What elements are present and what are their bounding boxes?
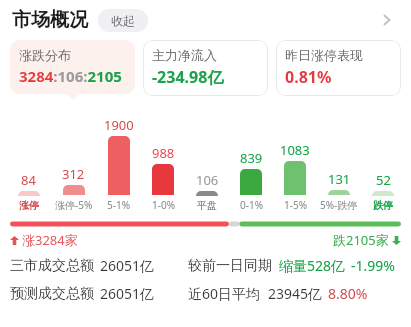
staticText: 0.81% — [285, 66, 332, 88]
staticText: 涨停-5% — [55, 198, 93, 212]
staticText: 0-1% — [240, 198, 263, 212]
staticText: 1083 — [280, 141, 310, 159]
staticText: 131 — [328, 170, 351, 188]
staticText: 106 — [196, 171, 219, 189]
staticText: 较前一日同期 — [188, 257, 272, 275]
staticText: 跌停 — [373, 199, 393, 212]
staticText: 近60日平均 — [188, 284, 261, 303]
staticText: 主力净流入 — [152, 47, 217, 63]
staticText: 1-5% — [284, 198, 307, 212]
staticText: 收起 — [111, 13, 135, 28]
staticText: 昨日涨停表现 — [285, 47, 363, 63]
staticText: 三市成交总额 — [10, 257, 94, 275]
staticText: 涨3284家 — [22, 231, 78, 249]
staticText: 26051亿 — [100, 256, 155, 275]
staticText: 涨跌分布 — [19, 47, 71, 63]
staticText: 缩量528亿 — [279, 256, 346, 275]
button[interactable]: 收起 — [98, 9, 148, 32]
staticText: 5%-跌停 — [320, 198, 358, 212]
staticText: 312 — [62, 165, 85, 183]
staticText: 平盘 — [197, 199, 217, 212]
staticText: 52 — [376, 171, 391, 189]
staticText: 23945亿 — [268, 284, 323, 303]
staticText: 839 — [240, 149, 263, 167]
button[interactable]: 主力净流入 — [143, 40, 268, 96]
staticText: 1-0% — [152, 198, 175, 212]
staticText: 8.80% — [328, 284, 368, 303]
staticText: 市场概况 — [12, 8, 88, 32]
staticText: 预测成交总额 — [10, 285, 94, 303]
staticText: 26051亿 — [100, 284, 155, 303]
staticText: 988 — [152, 144, 175, 162]
staticText: 84 — [21, 171, 36, 189]
staticText: 5-1% — [107, 198, 130, 212]
staticText: 涨停 — [19, 199, 39, 212]
staticText: 1900 — [104, 116, 134, 134]
button[interactable]: More — [373, 6, 401, 34]
staticText: 3284:106:2105 — [19, 66, 122, 86]
button[interactable]: 昨日涨停表现 — [276, 40, 401, 96]
staticText: -234.98亿 — [152, 66, 224, 88]
staticText: -1.99% — [351, 256, 395, 275]
button[interactable]: 涨跌分布 — [10, 40, 135, 94]
staticText: 跌2105家 — [333, 231, 389, 249]
